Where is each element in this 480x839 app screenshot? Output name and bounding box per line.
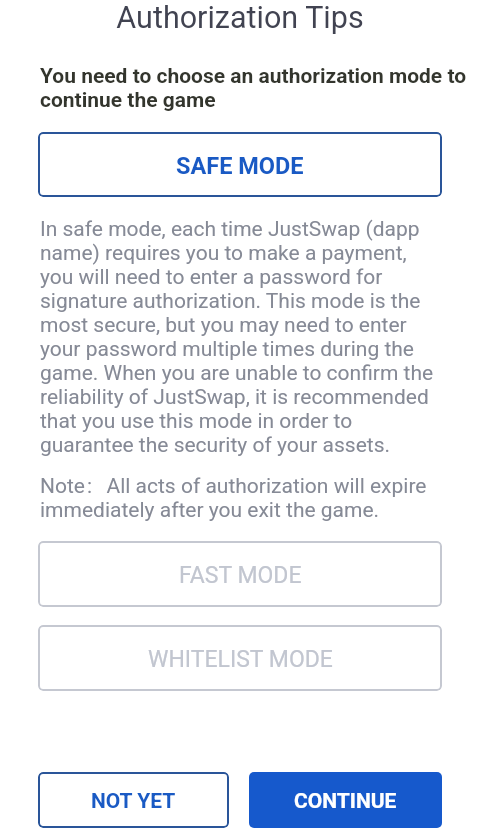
staticText: SAFE MODE [176,152,304,180]
staticText: CONTINUE [294,789,397,814]
staticText: In safe mode, each time JustSwap (dapp n… [40,217,436,457]
button[interactable]: CONTINUE [249,772,442,828]
staticText: FAST MODE [179,562,302,589]
staticText: You need to choose an authorization mode… [40,64,470,112]
staticText: Note : All acts of authorization will ex… [40,474,440,522]
staticText: Authorization Tips [0,0,480,36]
button[interactable]: NOT YET [38,772,229,828]
button[interactable]: SAFE MODE [38,132,442,197]
staticText: NOT YET [91,789,176,814]
button[interactable]: FAST MODE [38,541,442,607]
staticText: WHITELIST MODE [148,646,333,673]
button[interactable]: WHITELIST MODE [38,625,442,691]
